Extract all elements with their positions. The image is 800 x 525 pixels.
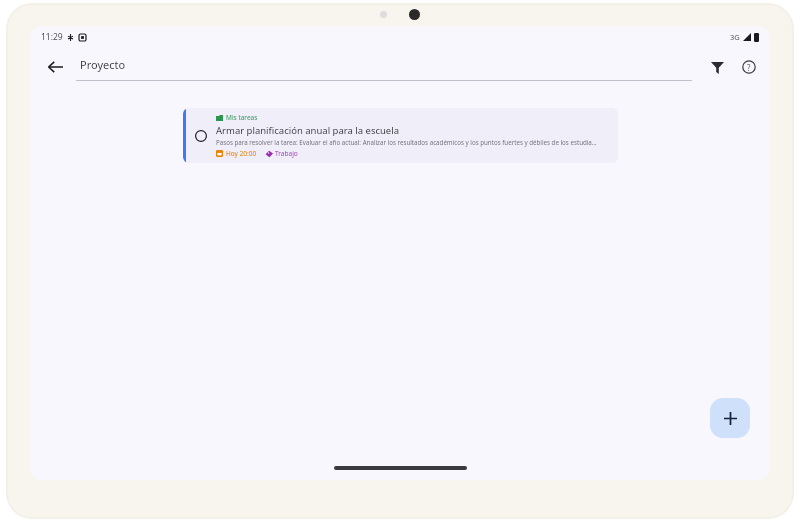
button[interactable]: Complete task <box>183 108 618 163</box>
button[interactable]: Help <box>734 52 764 82</box>
staticText: Pasos para resolver la tarea: Evaluar el… <box>216 138 597 146</box>
button[interactable]: Filter <box>702 52 732 82</box>
button[interactable]: Add task <box>710 398 750 438</box>
staticText: ? <box>747 62 751 73</box>
staticText: Armar planificación anual para la escuel… <box>216 124 400 137</box>
staticText: Trabajo <box>275 149 298 158</box>
button[interactable]: Back <box>38 50 72 84</box>
staticText: 3G <box>730 32 740 42</box>
staticText: Hoy 20:00 <box>226 149 257 158</box>
staticText: Mis tareas <box>226 113 258 122</box>
staticText: 11:29 <box>41 31 63 43</box>
button[interactable]: Proyecto <box>76 48 692 86</box>
button[interactable]: Complete task <box>186 121 216 151</box>
staticText: Proyecto <box>80 57 126 72</box>
